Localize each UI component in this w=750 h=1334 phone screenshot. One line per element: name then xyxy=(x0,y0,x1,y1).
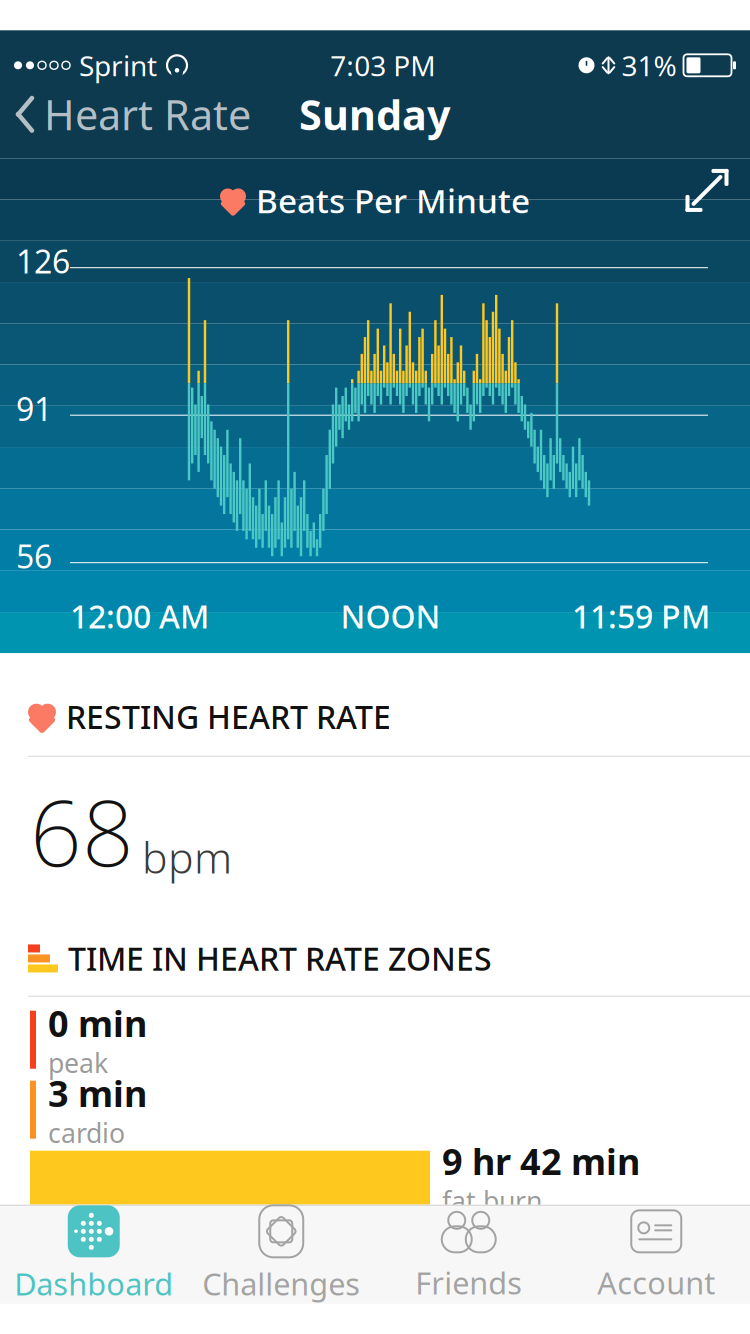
staticText: peak xyxy=(48,1045,108,1080)
staticText: 12:00 AM xyxy=(70,595,209,637)
staticText: Sprint xyxy=(79,47,157,84)
button[interactable]: Heart Rate xyxy=(0,81,251,148)
button[interactable]: Dashboard xyxy=(0,1197,187,1312)
staticText: 68 xyxy=(30,771,134,891)
staticText: 9 hr 42 min xyxy=(442,1137,640,1185)
staticText: TIME IN HEART RATE ZONES xyxy=(68,937,492,980)
staticText: bpm xyxy=(142,828,232,885)
staticText: Dashboard xyxy=(14,1263,173,1304)
staticText: Friends xyxy=(415,1262,522,1303)
staticText: Challenges xyxy=(202,1263,360,1304)
staticText: 126 xyxy=(16,240,70,282)
staticText: 31% xyxy=(621,47,676,84)
staticText: cardio xyxy=(48,1115,125,1150)
staticText: 3 min xyxy=(48,1069,147,1117)
staticText: 7:03 PM xyxy=(330,47,435,84)
staticText: 0 min xyxy=(48,999,147,1047)
staticText: 56 xyxy=(16,535,52,577)
staticText: fat burn xyxy=(442,1183,542,1218)
staticText: 91 xyxy=(16,387,52,430)
staticText: Sunday xyxy=(299,87,451,142)
button[interactable]: Account xyxy=(562,1198,750,1311)
staticText: Account xyxy=(597,1262,715,1303)
staticText: 11:59 PM xyxy=(572,595,710,637)
button[interactable]: Challenges xyxy=(187,1197,375,1312)
staticText: Beats Per Minute xyxy=(256,178,530,223)
staticText: RESTING HEART RATE xyxy=(66,695,391,738)
button[interactable]: Friends xyxy=(375,1198,562,1311)
button[interactable]: Expand chart xyxy=(684,167,730,213)
staticText: Heart Rate xyxy=(44,87,251,142)
staticText: NOON xyxy=(340,595,440,637)
